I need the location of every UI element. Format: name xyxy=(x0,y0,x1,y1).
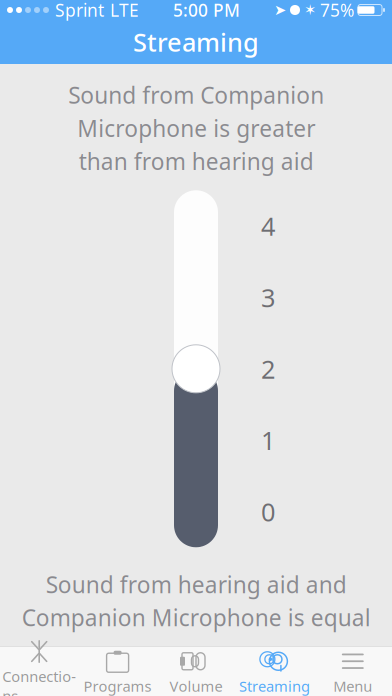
staticText: 4 xyxy=(261,209,275,243)
button[interactable]: Streaming xyxy=(235,644,314,696)
staticText: Sprint xyxy=(55,0,104,21)
staticText: Sound from hearing aid and Companion Mic… xyxy=(21,569,370,632)
staticText: Volume xyxy=(169,676,222,696)
staticText: Streaming xyxy=(133,25,259,59)
staticText: ➤ xyxy=(274,2,286,18)
staticText: 2 xyxy=(261,352,275,386)
staticText: Programs xyxy=(84,676,152,696)
staticText: 1 xyxy=(261,423,275,457)
staticText: LTE xyxy=(110,0,139,21)
staticText: 0 xyxy=(261,495,275,528)
staticText: Streaming xyxy=(239,676,310,696)
staticText: Connections xyxy=(2,666,76,696)
staticText: If you want more sound from the hearing … xyxy=(17,650,375,696)
staticText: Menu xyxy=(333,676,372,696)
staticText: 75% xyxy=(320,0,354,21)
button[interactable]: Connections xyxy=(0,634,78,696)
staticText: ✶ xyxy=(304,2,316,18)
staticText: Sound from Companion Microphone is great… xyxy=(68,80,324,176)
staticText: 3 xyxy=(261,281,275,314)
button[interactable]: Programs xyxy=(78,644,157,696)
button[interactable]: Volume xyxy=(157,644,235,696)
button[interactable]: Menu xyxy=(314,644,392,696)
staticText: 5:00 PM xyxy=(173,0,240,21)
